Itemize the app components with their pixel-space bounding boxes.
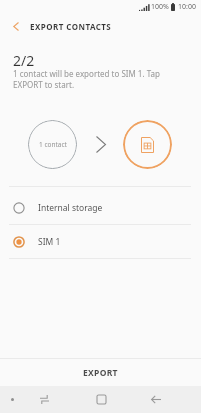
staticText: EXPORT CONTACTS bbox=[30, 21, 112, 32]
button[interactable]: Internal storage bbox=[0, 191, 201, 225]
staticText: EXPORT bbox=[83, 367, 118, 379]
staticText: 2/2 bbox=[13, 51, 35, 70]
button[interactable]: EXPORT bbox=[0, 359, 201, 386]
button[interactable]: Back bbox=[0, 14, 30, 39]
button[interactable]: Recents bbox=[30, 386, 58, 413]
button[interactable]: Back bbox=[142, 386, 170, 413]
button[interactable]: Home bbox=[87, 386, 115, 413]
staticText: Internal storage bbox=[38, 202, 103, 214]
button[interactable]: Hide navigation bar bbox=[2, 386, 23, 413]
staticText: 1 contact bbox=[39, 140, 67, 149]
staticText: 1 contact will be exported to SIM 1. Tap… bbox=[13, 68, 160, 90]
staticText: 10:00 bbox=[178, 2, 196, 12]
staticText: SIM 1 bbox=[38, 236, 61, 248]
staticText: 100% bbox=[151, 2, 169, 12]
button[interactable]: SIM 1 bbox=[0, 225, 201, 259]
